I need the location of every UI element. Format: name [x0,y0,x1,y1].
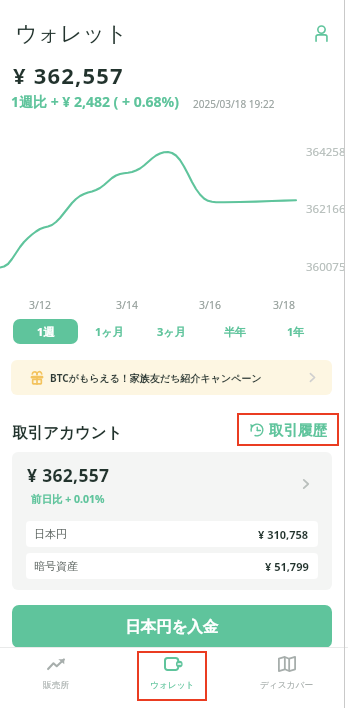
staticText: 3/16 [195,298,225,312]
staticText: 日本円 [34,527,67,541]
staticText: ウォレット [15,20,128,48]
staticText: 2025/03/18 19:22 [193,97,275,111]
staticText: 半年 [224,325,246,339]
button[interactable]: 取引履歴 [237,413,339,446]
staticText: ¥ 51,799 [265,559,309,574]
button[interactable]: 1年 [263,319,328,344]
staticText: 3/18 [269,298,299,312]
staticText: BTCがもらえる！家族友だち紹介キャンペーン [50,371,262,385]
button[interactable]: 1週 [13,319,78,344]
staticText: 3/12 [25,298,55,312]
staticText: ¥ 362,557 [27,463,110,487]
staticText: 1ヶ月 [95,324,124,339]
staticText: 取引履歴 [269,421,327,439]
staticText: 362166 [306,201,346,217]
staticText: 3ヶ月 [157,324,186,339]
staticText: ¥ 362,557 [13,60,124,90]
staticText: 取引アカウント [12,423,123,443]
button[interactable]: ウォレット [137,651,207,701]
staticText: 1週比 + ¥ 2,482 ( + 0.68%) [11,92,179,111]
button[interactable]: BTCがもらえる！家族友だち紹介キャンペーン [11,360,332,395]
button[interactable]: 3ヶ月 [139,319,204,344]
staticText: 1年 [287,324,305,339]
staticText: ディスカバー [260,680,314,691]
staticText: 日本円を入金 [125,617,219,637]
staticText: 364258 [306,144,346,160]
staticText: 1週 [37,324,55,339]
staticText: ウォレット [150,680,195,691]
button[interactable]: 半年 [202,319,267,344]
button[interactable]: Account [308,20,334,46]
button[interactable]: 日本円 [26,521,318,547]
staticText: 販売所 [43,680,70,691]
staticText: 3/14 [112,298,142,312]
staticText: ¥ 310,758 [258,527,309,542]
button[interactable]: 1ヶ月 [77,319,142,344]
staticText: 暗号資産 [34,559,78,573]
staticText: 前日比 + 0.01% [31,492,105,506]
button[interactable]: ¥ 362,557 [12,452,332,516]
button[interactable]: 日本円を入金 [12,605,332,648]
button[interactable]: 暗号資産 [26,553,318,579]
staticText: 360075 [306,259,346,275]
button[interactable]: ディスカバー [252,651,322,701]
button[interactable]: 販売所 [21,651,91,701]
